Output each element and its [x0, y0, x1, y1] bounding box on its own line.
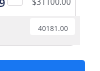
button[interactable]: 40181.00 — [30, 18, 75, 35]
button[interactable] — [0, 60, 85, 71]
staticText: $31100.00 — [32, 0, 71, 7]
staticText: 40181.00 — [38, 24, 68, 34]
staticText: 9 — [0, 0, 6, 10]
button[interactable] — [7, 0, 23, 6]
